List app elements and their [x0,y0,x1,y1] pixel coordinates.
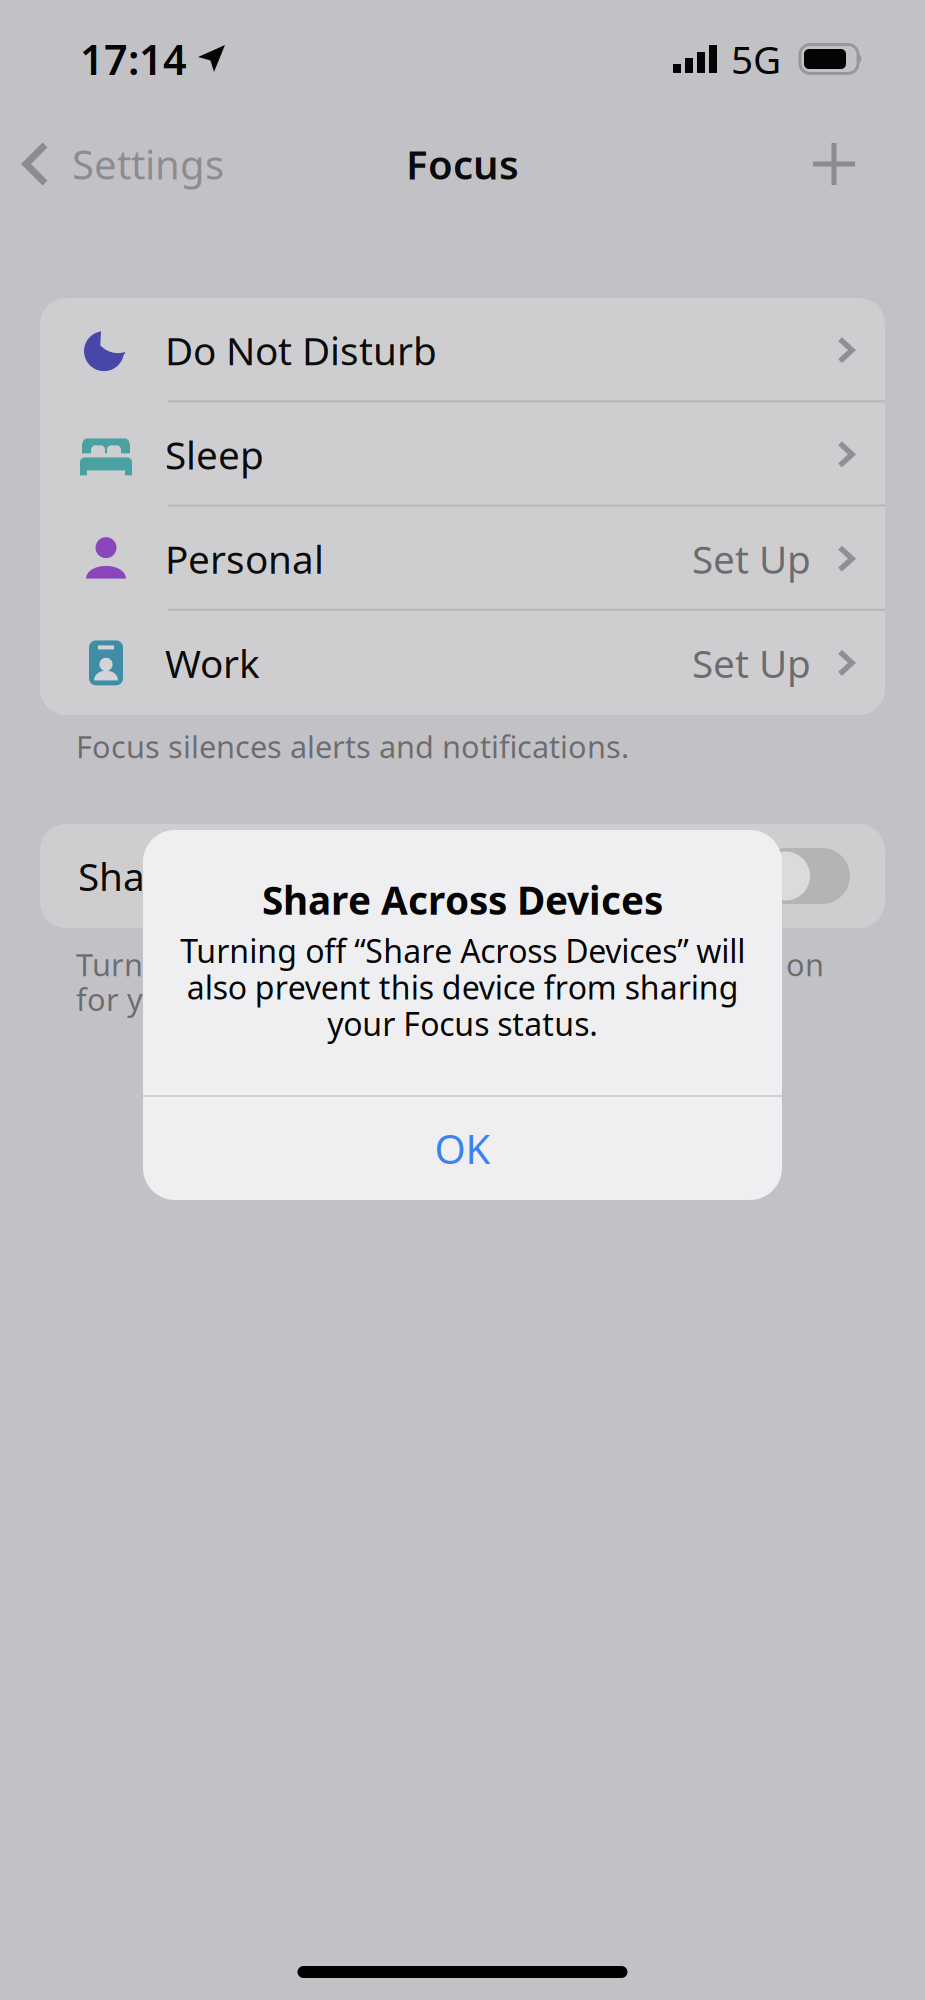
button[interactable]: Sleep [40,402,885,506]
staticText: Set Up [692,533,811,584]
staticText: Turning off “Share Across Devices” will … [180,929,745,1045]
staticText: Share Across Devices [78,850,461,902]
button[interactable]: Settings [0,125,224,202]
staticText: Work [165,637,260,688]
staticText: Personal [165,533,324,584]
staticText: 5G [731,33,781,85]
button[interactable]: Add Focus [788,128,880,200]
staticText: Do Not Disturb [165,324,437,376]
staticText: OK [434,1122,490,1175]
button[interactable]: Share Across Devices [40,824,885,928]
staticText: Focus silences alerts and notifications. [76,726,629,767]
button[interactable]: Do Not Disturb [40,298,885,402]
button[interactable]: Personal [40,506,885,611]
staticText: 17:14 [80,32,187,86]
staticText: Set Up [692,637,811,688]
button[interactable]: Work [40,611,885,715]
staticText: Sleep [165,429,264,480]
button[interactable]: OK [143,1097,782,1200]
staticText: Focus [406,137,519,190]
staticText: Turn on to share your Focus status and a… [76,944,824,1019]
staticText: Share Across Devices [262,874,663,925]
staticText: Settings [72,137,224,190]
